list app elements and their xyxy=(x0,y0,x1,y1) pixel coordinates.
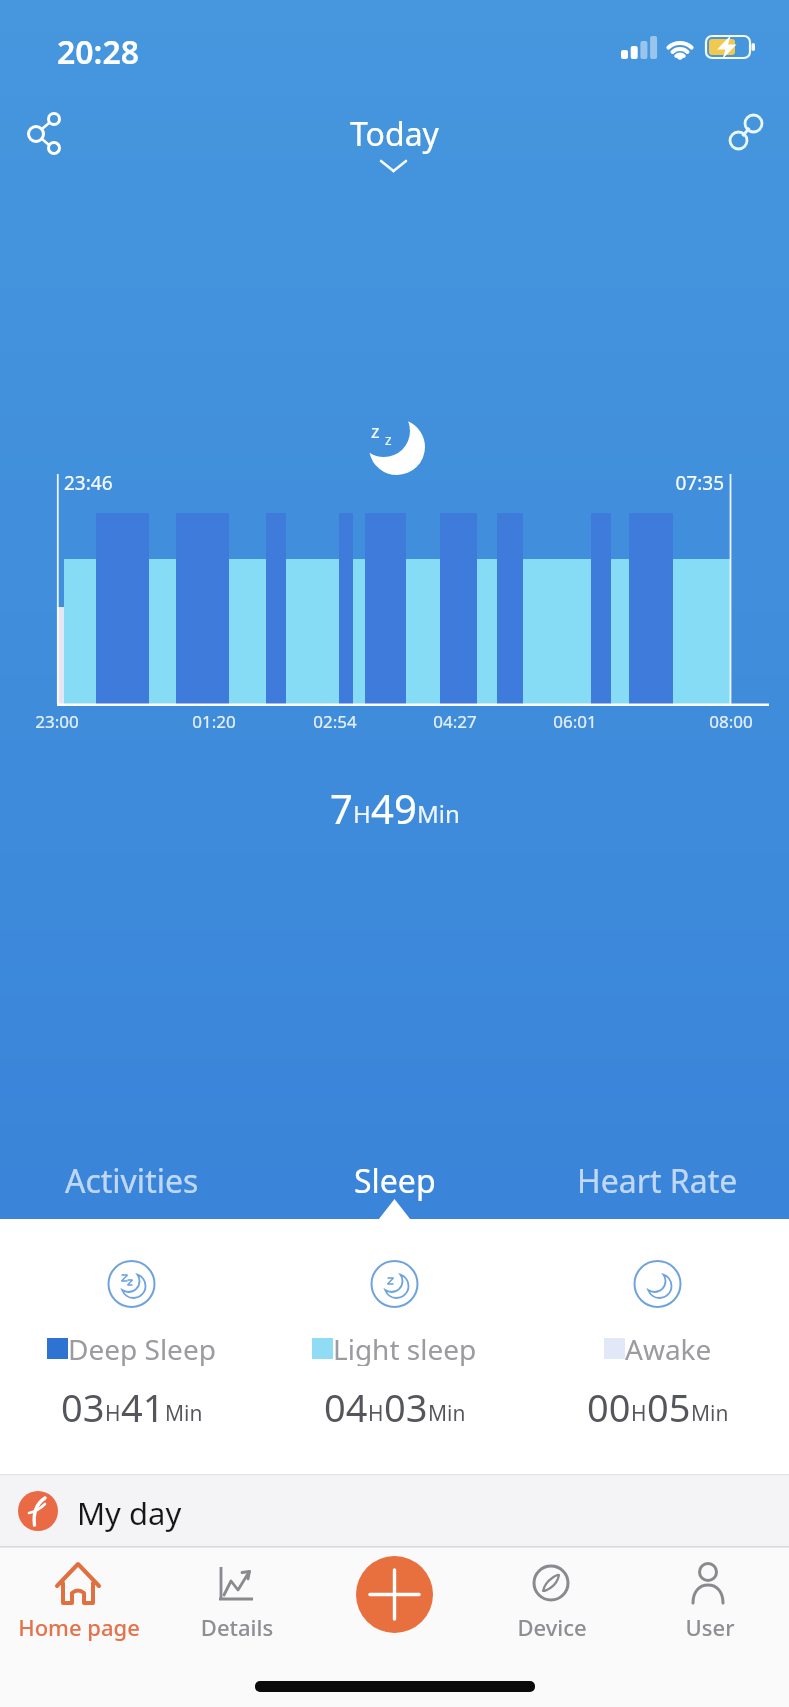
staticText: Awake xyxy=(625,1330,712,1366)
staticText: 08:00 xyxy=(696,710,766,733)
button[interactable] xyxy=(356,1556,433,1633)
button[interactable] xyxy=(632,1548,789,1658)
staticText: Home page xyxy=(0,1612,158,1642)
staticText: Device xyxy=(473,1612,631,1642)
staticText: 23:46 xyxy=(64,470,113,496)
staticText: Min xyxy=(165,1399,203,1428)
staticText: z xyxy=(371,419,380,444)
staticText: 04:27 xyxy=(420,710,490,733)
staticText: H xyxy=(105,1399,121,1428)
button[interactable]: Light sleep xyxy=(263,1330,526,1366)
staticText: 01:20 xyxy=(179,710,249,733)
staticText: User xyxy=(631,1612,789,1642)
button[interactable] xyxy=(316,1548,474,1658)
staticText: H xyxy=(353,797,371,830)
button[interactable]: Awake xyxy=(526,1330,789,1366)
staticText: Sleep xyxy=(354,1159,436,1203)
staticText: My day xyxy=(77,1492,182,1534)
button[interactable]: 00 xyxy=(526,1381,789,1433)
button[interactable] xyxy=(330,105,460,177)
staticText: 03 xyxy=(384,1381,428,1433)
staticText: Light sleep xyxy=(333,1330,477,1366)
staticText: Min xyxy=(417,797,460,830)
staticText: 05 xyxy=(647,1381,691,1433)
button[interactable]: 03 xyxy=(0,1381,263,1433)
button[interactable] xyxy=(18,108,70,160)
staticText: Details xyxy=(158,1612,316,1642)
staticText: z xyxy=(385,430,392,449)
staticText: 02:54 xyxy=(300,710,370,733)
staticText: Heart Rate xyxy=(577,1159,738,1203)
staticText: 41 xyxy=(121,1381,165,1433)
button[interactable] xyxy=(158,1548,316,1658)
button[interactable]: Activities xyxy=(0,1158,263,1204)
staticText: 20:28 xyxy=(57,30,140,74)
button[interactable] xyxy=(0,1474,789,1546)
staticText: 7 xyxy=(330,781,353,835)
staticText: 06:01 xyxy=(540,710,610,733)
staticText: Min xyxy=(428,1399,466,1428)
staticText: 03 xyxy=(61,1381,105,1433)
staticText: 07:35 xyxy=(669,470,724,496)
button[interactable] xyxy=(474,1548,632,1658)
button[interactable]: Deep Sleep xyxy=(0,1330,263,1366)
staticText: 04 xyxy=(324,1381,368,1433)
button[interactable] xyxy=(722,108,774,160)
staticText: Today xyxy=(0,112,789,156)
staticText: 49 xyxy=(371,781,417,835)
button[interactable]: 04 xyxy=(263,1381,526,1433)
button[interactable]: Heart Rate xyxy=(526,1158,789,1204)
staticText: 23:00 xyxy=(22,710,92,733)
staticText: Deep Sleep xyxy=(68,1330,216,1366)
staticText: H xyxy=(368,1399,384,1428)
staticText: Min xyxy=(691,1399,729,1428)
staticText: Activities xyxy=(65,1159,199,1203)
staticText: 00 xyxy=(587,1381,631,1433)
staticText: H xyxy=(631,1399,647,1428)
button[interactable]: Sleep xyxy=(263,1158,526,1204)
button[interactable] xyxy=(0,1548,158,1658)
